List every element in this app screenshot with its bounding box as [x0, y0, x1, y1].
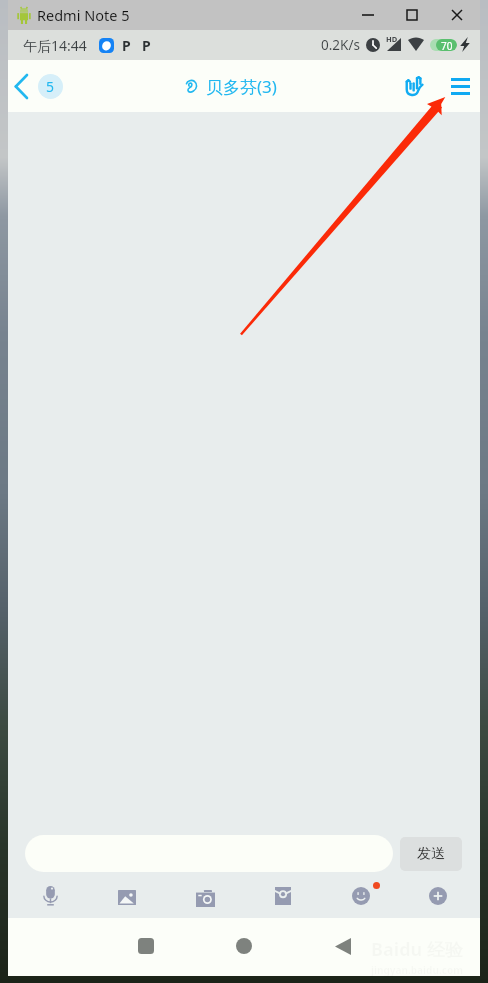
button[interactable]: Voice	[31, 877, 69, 915]
staticText: 5	[46, 77, 55, 96]
staticText: jingyan.baidu.com	[371, 963, 463, 977]
button[interactable]: Minimize	[345, 0, 391, 30]
button[interactable]: Home	[222, 924, 266, 968]
button[interactable]: Sign language	[396, 66, 432, 106]
button[interactable]: 发送	[400, 837, 462, 871]
button[interactable]: Camera	[186, 879, 224, 917]
button[interactable]: Recents	[124, 924, 168, 968]
button[interactable]: 5	[38, 74, 63, 99]
staticText: 午后14:44	[23, 36, 87, 55]
button[interactable]: Emoji	[342, 877, 380, 915]
button[interactable]: Maximize	[389, 0, 435, 30]
button[interactable]: Back	[321, 924, 365, 968]
button[interactable]: Red packet	[264, 877, 302, 915]
button[interactable]: Back	[4, 66, 38, 106]
staticText: P	[142, 36, 151, 55]
button[interactable]: More	[419, 877, 457, 915]
staticText: Redmi Note 5	[37, 5, 130, 25]
button[interactable]: Menu	[442, 66, 478, 106]
button[interactable]: Close	[434, 0, 480, 30]
staticText: 贝多芬(3)	[206, 75, 277, 98]
staticText: 0.2K/s	[321, 36, 360, 54]
staticText: P	[122, 36, 131, 55]
button[interactable]: Gallery	[108, 878, 146, 916]
staticText: 发送	[417, 845, 445, 863]
staticText: HD	[386, 34, 398, 44]
staticText: 70	[441, 39, 453, 51]
